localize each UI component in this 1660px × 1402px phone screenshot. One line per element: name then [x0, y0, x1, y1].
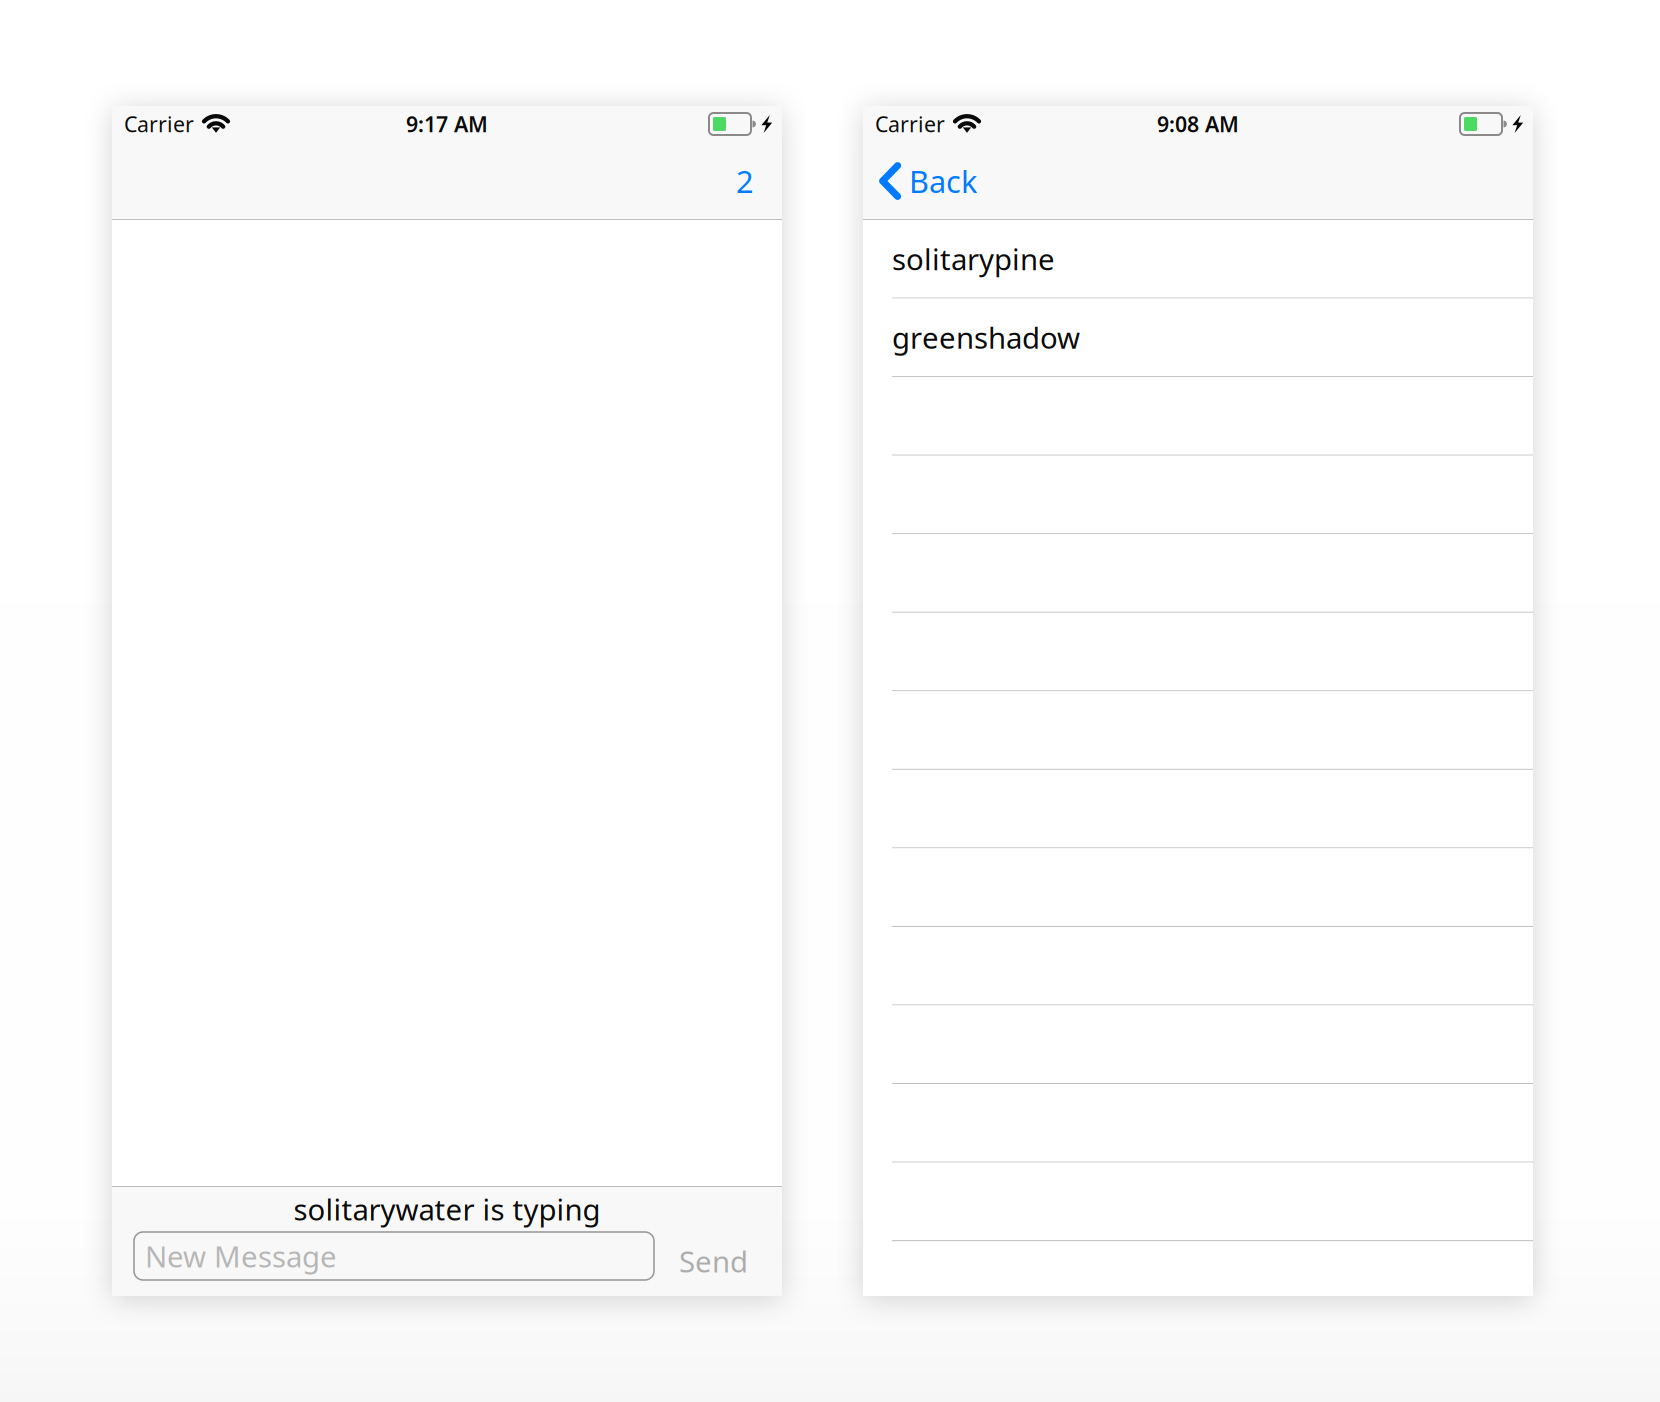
staticText: Carrier	[875, 110, 945, 138]
staticText: Carrier	[124, 110, 194, 138]
staticText: 9:17 AM	[406, 110, 488, 138]
staticText: greenshadow	[892, 318, 1080, 357]
staticText: solitarypine	[892, 239, 1055, 278]
staticText: Back	[909, 161, 977, 201]
button[interactable]: Send	[679, 1232, 748, 1280]
button[interactable]: Back	[863, 142, 989, 220]
staticText: New Message	[145, 1236, 337, 1275]
textField[interactable]: New Message	[134, 1232, 654, 1280]
button[interactable]: solitarypine	[863, 220, 1533, 298]
staticText: Send	[679, 1241, 748, 1280]
staticText: 2	[736, 161, 754, 201]
button[interactable]: greenshadow	[863, 299, 1533, 377]
staticText: 9:08 AM	[1157, 110, 1239, 138]
button[interactable]: 2	[719, 142, 771, 220]
staticText: solitarywater is typing	[293, 1189, 600, 1228]
